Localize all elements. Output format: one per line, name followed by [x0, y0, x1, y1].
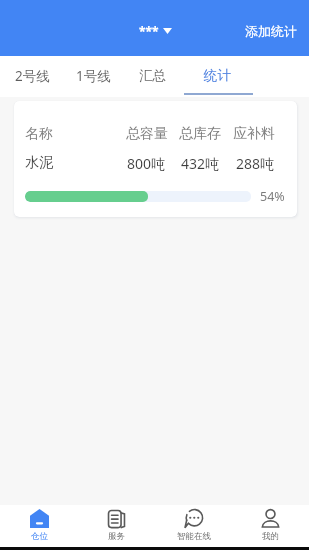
button[interactable]: 2号线: [1, 56, 63, 97]
staticText: 总容量: [126, 125, 168, 143]
staticText: 智能在线: [177, 531, 211, 542]
staticText: 432吨: [180, 154, 220, 173]
button[interactable]: 仓位 Warehouse: [0, 505, 78, 547]
staticText: 仓位: [31, 531, 48, 542]
staticText: 汇总: [139, 67, 166, 84]
staticText: ***: [139, 23, 159, 39]
staticText: 添加统计: [245, 23, 297, 39]
button[interactable]: 智能在线 Chat: [155, 505, 232, 547]
button[interactable]: 添加统计: [233, 17, 309, 45]
staticText: 服务: [108, 531, 125, 542]
staticText: 1号线: [76, 67, 111, 85]
button[interactable]: 1号线: [62, 56, 124, 97]
staticText: 2号线: [15, 67, 50, 85]
button[interactable]: ***: [135, 19, 176, 43]
staticText: 54%: [260, 188, 285, 205]
button[interactable]: 我的 Profile: [232, 505, 309, 547]
staticText: 我的: [262, 531, 279, 542]
staticText: 应补料: [233, 125, 275, 143]
staticText: 800吨: [126, 154, 166, 173]
staticText: 统计: [204, 67, 231, 84]
button[interactable]: 服务 Services: [78, 505, 155, 547]
staticText: 总库存: [179, 125, 221, 143]
staticText: 288吨: [235, 154, 275, 173]
button[interactable]: 统计: [183, 56, 252, 97]
staticText: 水泥: [25, 154, 53, 172]
button[interactable]: 汇总: [123, 56, 182, 97]
staticText: 名称: [25, 125, 53, 143]
